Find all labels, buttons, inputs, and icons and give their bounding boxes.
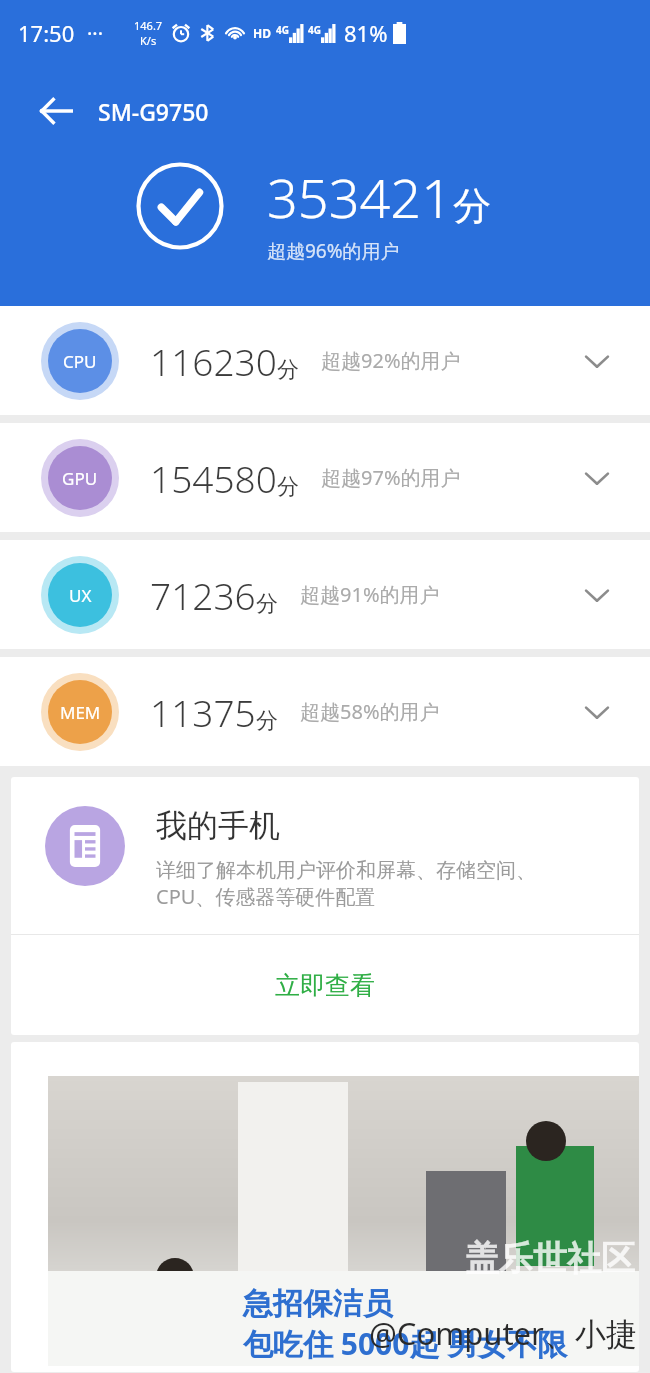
staticText: 4G: [276, 23, 289, 37]
staticText: 详细了解本机用户评价和屏幕、存储空间、: [156, 858, 536, 883]
button[interactable]: UX: [0, 540, 650, 649]
staticText: 我的手机: [156, 806, 280, 845]
button[interactable]: 我的手机: [11, 777, 639, 1035]
staticText: 154580: [150, 453, 277, 503]
button[interactable]: Back: [28, 83, 84, 139]
button[interactable]: MEM: [0, 657, 650, 766]
staticText: ···: [87, 20, 104, 47]
staticText: 353421: [267, 160, 453, 234]
button[interactable]: GPU: [0, 423, 650, 532]
staticText: @Computer、小捷: [369, 1312, 637, 1354]
staticText: 分: [256, 707, 278, 735]
button[interactable]: CPU: [0, 306, 650, 415]
staticText: 立即查看: [275, 970, 375, 1001]
staticText: 分: [453, 182, 491, 230]
staticText: 116230: [150, 336, 277, 386]
staticText: HD: [253, 25, 271, 41]
staticText: UX: [69, 584, 92, 607]
staticText: MEM: [60, 701, 101, 724]
other: Expand GPU: [566, 447, 628, 509]
staticText: 超越96%的用户: [267, 238, 400, 264]
other: Expand UX: [566, 564, 628, 626]
staticText: 11375: [150, 687, 256, 737]
staticText: 分: [256, 590, 278, 618]
staticText: 分: [277, 356, 299, 384]
other: Expand CPU: [566, 330, 628, 392]
button[interactable]: 立即查看: [11, 935, 639, 1035]
staticText: 盖乐世社区: [465, 1237, 635, 1280]
staticText: 分: [277, 473, 299, 501]
staticText: 急招保洁员: [243, 1285, 393, 1323]
staticText: GPU: [62, 467, 98, 490]
button[interactable]: 急招保洁员: [11, 1042, 639, 1372]
staticText: 超越92%的用户: [321, 347, 461, 374]
other: Expand MEM: [566, 681, 628, 743]
staticText: SM-G9750: [98, 96, 209, 127]
staticText: 包吃住 5000起 男女不限: [243, 1323, 568, 1364]
staticText: K/s: [140, 33, 157, 48]
staticText: 146.7: [134, 18, 163, 33]
staticText: 71236: [150, 570, 256, 620]
staticText: CPU: [63, 350, 97, 373]
staticText: 超越58%的用户: [300, 698, 440, 725]
staticText: 超越97%的用户: [321, 464, 461, 491]
staticText: 81%: [344, 18, 388, 48]
staticText: 4G: [308, 23, 321, 37]
staticText: 17:50: [18, 18, 75, 48]
staticText: CPU、传感器等硬件配置: [156, 883, 376, 910]
staticText: 超越91%的用户: [300, 581, 440, 608]
